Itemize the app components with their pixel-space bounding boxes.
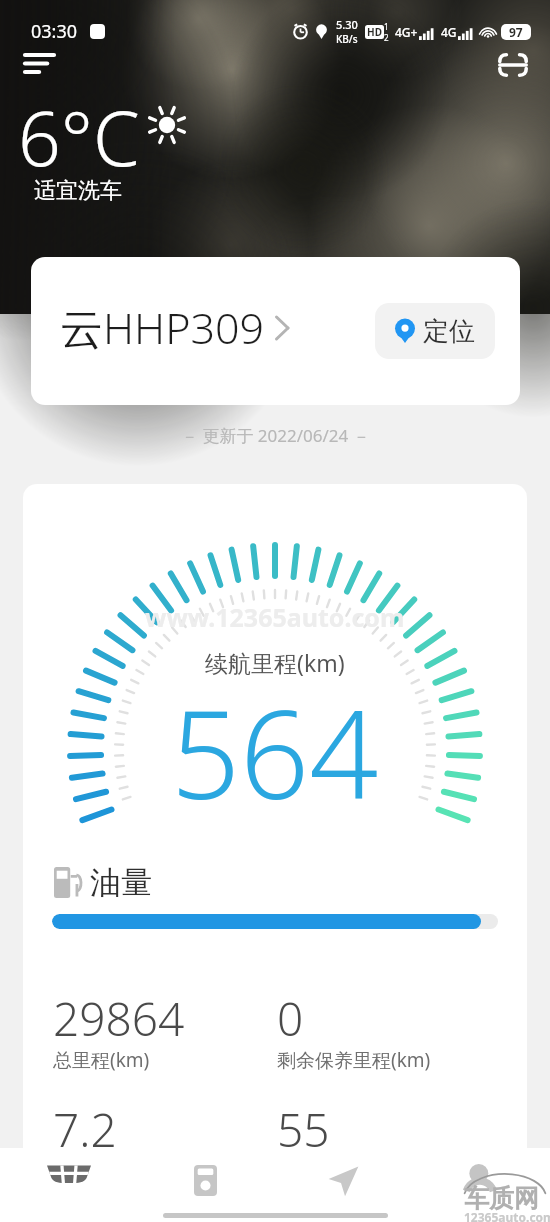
staticText: 云HHP309 [60,298,265,357]
staticText: 6°C [18,86,140,188]
button[interactable]: Menu [16,51,60,75]
staticText: HD [367,25,382,39]
staticText: 续航里程(km) [205,647,345,678]
staticText: 剩余保养里程(km) [277,1047,431,1073]
staticText: 油量 [90,863,152,902]
staticText: 7.2 [53,1098,117,1148]
button[interactable]: Vehicle [0,1148,137,1222]
button[interactable]: 定位 [375,303,495,359]
button[interactable]: Profile [412,1148,550,1222]
staticText: 适宜洗车 [34,177,122,205]
staticText: 车质网 [464,1183,539,1214]
staticText: 1 [384,21,389,32]
button[interactable]: 云HHP309 [31,257,520,405]
staticText: 12365auto.com [464,1209,550,1222]
staticText: KB/s [336,32,358,46]
staticText: 总里程(km) [53,1047,150,1073]
staticText: 2 [384,32,389,43]
button[interactable]: Navigation [274,1148,412,1222]
staticText: 4G [441,24,457,40]
staticText: 03:30 [31,19,78,44]
button[interactable]: Remote control [137,1148,274,1222]
staticText: 97 [509,24,523,40]
staticText: www.12365auto.com [145,600,405,634]
staticText: 定位 [423,315,475,348]
staticText: 4G+ [395,24,418,40]
staticText: 29864 [53,987,185,1050]
staticText: 55 [277,1098,330,1148]
button[interactable]: Scan QR code [491,51,535,75]
staticText: 5.30 [336,17,358,32]
staticText: 564 [171,670,379,835]
staticText: 0 [277,987,304,1050]
staticText: － 更新于 2022/06/24 － [181,424,370,447]
